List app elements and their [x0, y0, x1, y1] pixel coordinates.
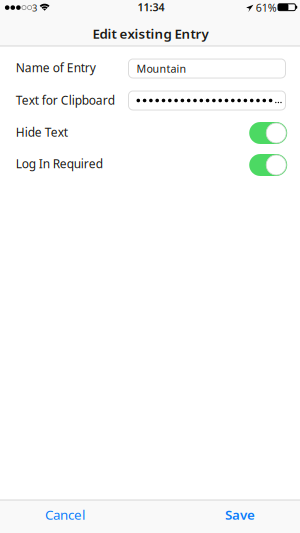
staticText: Edit existing Entry [92, 25, 208, 42]
staticText: Text for Clipboard [16, 92, 115, 108]
button[interactable]: Text for Clipboard [128, 91, 285, 110]
staticText: 3 [32, 2, 37, 14]
staticText: Hide Text [16, 124, 68, 140]
staticText: Name of Entry [16, 59, 96, 75]
button[interactable]: Cancel [35, 499, 95, 529]
button[interactable]: Hide Text [249, 122, 287, 144]
button[interactable]: Log In Required [249, 154, 287, 176]
staticText: Cancel [45, 506, 85, 523]
staticText: Save [225, 506, 255, 523]
staticText: 61% [256, 0, 277, 15]
staticText: Mountain [136, 61, 186, 76]
button[interactable]: Name of Entry [128, 59, 285, 78]
button[interactable]: Save [215, 499, 265, 529]
staticText: Log In Required [16, 155, 103, 171]
staticText: 11:34 [137, 0, 164, 14]
